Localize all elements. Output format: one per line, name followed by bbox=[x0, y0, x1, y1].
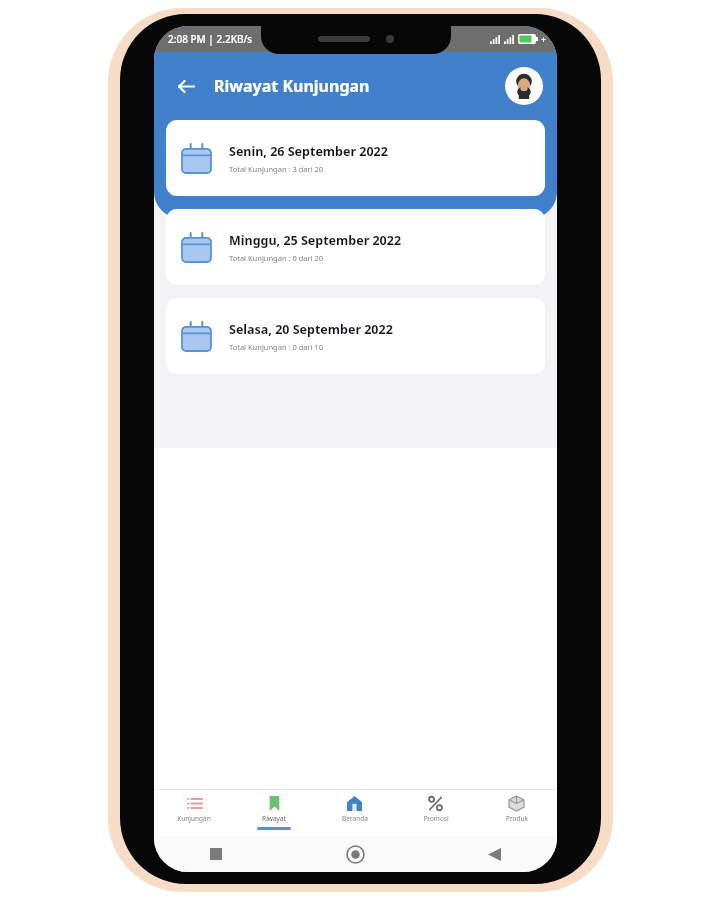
staticText: Promosi bbox=[423, 814, 449, 823]
staticText: Riwayat Kunjungan bbox=[214, 75, 370, 97]
button[interactable]: Produk bbox=[476, 790, 557, 836]
staticText: Beranda bbox=[342, 814, 368, 823]
button[interactable]: Minggu, 25 September 2022 bbox=[166, 209, 545, 285]
staticText: Senin, 26 September 2022 bbox=[229, 143, 388, 160]
button[interactable]: Kunjungan bbox=[154, 790, 234, 836]
button[interactable]: Back bbox=[168, 69, 202, 103]
staticText: Produk bbox=[506, 814, 528, 823]
staticText: 2:08 PM | 2.2KB/s bbox=[168, 32, 253, 46]
button[interactable]: Senin, 26 September 2022 bbox=[166, 120, 545, 196]
staticText: Riwayat bbox=[262, 814, 286, 823]
staticText: Total Kunjungan : 3 dari 20 bbox=[229, 164, 324, 174]
staticText: Total Kunjungan : 0 dari 20 bbox=[229, 253, 324, 263]
staticText: Kunjungan bbox=[177, 814, 211, 823]
button[interactable]: Beranda bbox=[314, 790, 395, 836]
staticText: Total Kunjungan : 0 dari 10 bbox=[229, 342, 324, 352]
button[interactable]: Riwayat bbox=[234, 790, 314, 836]
staticText: Selasa, 20 September 2022 bbox=[229, 321, 393, 338]
button[interactable]: Promosi bbox=[395, 790, 476, 836]
button[interactable]: Profile bbox=[505, 67, 543, 105]
button[interactable]: Selasa, 20 September 2022 bbox=[166, 298, 545, 374]
staticText: Minggu, 25 September 2022 bbox=[229, 232, 402, 249]
staticText: + bbox=[541, 33, 547, 45]
